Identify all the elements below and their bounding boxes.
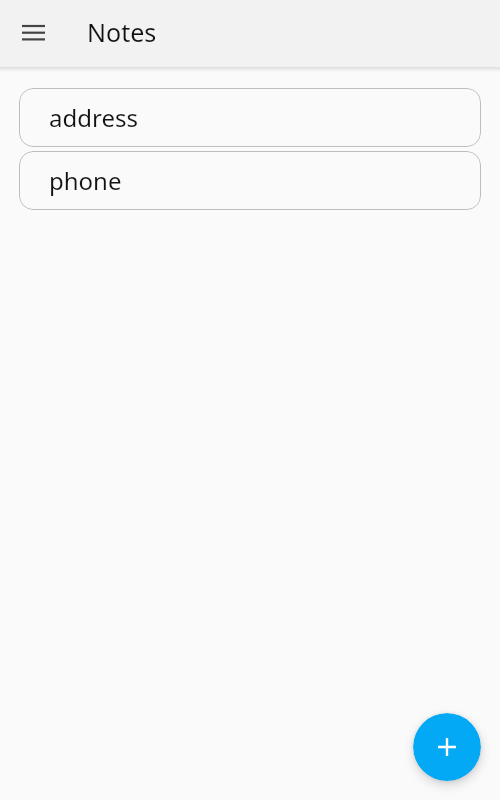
staticText: address: [49, 101, 138, 134]
staticText: phone: [49, 164, 122, 197]
staticText: Notes: [87, 15, 157, 49]
button[interactable]: phone: [19, 151, 481, 210]
button[interactable]: Add note: [413, 713, 481, 781]
button[interactable]: address: [19, 88, 481, 147]
button[interactable]: Open navigation menu: [9, 9, 57, 57]
